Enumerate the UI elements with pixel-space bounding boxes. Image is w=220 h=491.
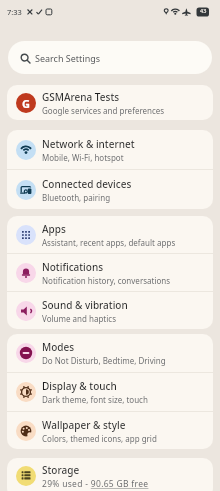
button[interactable]: Notifications bbox=[7, 254, 213, 291]
staticText: Display & touch bbox=[42, 379, 117, 393]
staticText: 43 bbox=[200, 7, 207, 14]
staticText: Sound & vibration bbox=[42, 298, 128, 312]
staticText: Search Settings bbox=[35, 52, 101, 64]
staticText: Colors, themed icons, app grid bbox=[42, 433, 157, 444]
staticText: Do Not Disturb, Bedtime, Driving bbox=[42, 355, 166, 366]
staticText: Wallpaper & style bbox=[42, 418, 126, 432]
staticText: Volume and haptics bbox=[42, 313, 116, 324]
staticText: 7:33 bbox=[7, 7, 22, 17]
staticText: Mobile, Wi-Fi, hotspot bbox=[42, 152, 124, 163]
button[interactable]: Storage bbox=[7, 458, 213, 491]
staticText: 29% used - 90.65 GB free bbox=[42, 478, 149, 490]
staticText: Apps bbox=[42, 222, 66, 236]
staticText: Bluetooth, pairing bbox=[42, 192, 111, 203]
staticText: GSMArena Tests bbox=[42, 90, 120, 104]
button[interactable]: Connected devices bbox=[7, 170, 213, 209]
staticText: Connected devices bbox=[42, 177, 132, 191]
button[interactable]: Sound & vibration bbox=[7, 292, 213, 329]
staticText: Assistant, recent apps, default apps bbox=[42, 237, 176, 248]
staticText: Modes bbox=[42, 340, 75, 354]
button[interactable]: Display & touch bbox=[7, 373, 213, 411]
button[interactable]: Apps bbox=[7, 216, 213, 253]
button[interactable]: Modes bbox=[7, 334, 213, 372]
staticText: Google services and preferences bbox=[42, 105, 165, 116]
staticText: G bbox=[22, 96, 30, 111]
button[interactable]: Network & internet bbox=[7, 130, 213, 169]
staticText: Network & internet bbox=[42, 137, 135, 151]
staticText: Dark theme, font size, touch bbox=[42, 394, 148, 405]
button[interactable]: Search Settings bbox=[8, 41, 212, 74]
staticText: Storage bbox=[42, 463, 80, 477]
button[interactable]: Wallpaper & style bbox=[7, 412, 213, 449]
staticText: Notifications bbox=[42, 260, 104, 274]
button[interactable]: G bbox=[7, 85, 213, 120]
staticText: Notification history, conversations bbox=[42, 275, 171, 286]
